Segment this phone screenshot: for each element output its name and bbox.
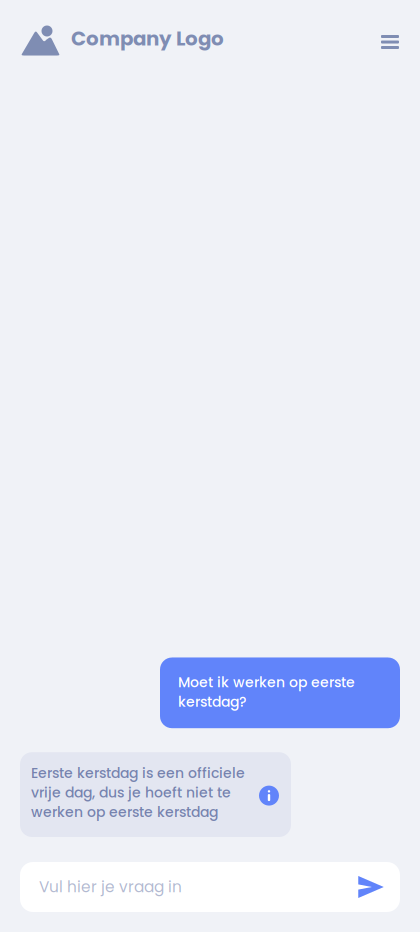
- button[interactable]: More information: [259, 780, 279, 806]
- button[interactable]: Send: [349, 862, 393, 912]
- staticText: Company Logo: [71, 25, 224, 52]
- staticText: Eerste kerstdag is een officiele vrije d…: [31, 763, 245, 822]
- button[interactable]: Vul hier je vraag in: [20, 862, 349, 912]
- button[interactable]: Menu: [373, 22, 407, 56]
- staticText: Vul hier je vraag in: [39, 876, 182, 898]
- staticText: Moet ik werken op eerste kerstdag?: [178, 672, 355, 712]
